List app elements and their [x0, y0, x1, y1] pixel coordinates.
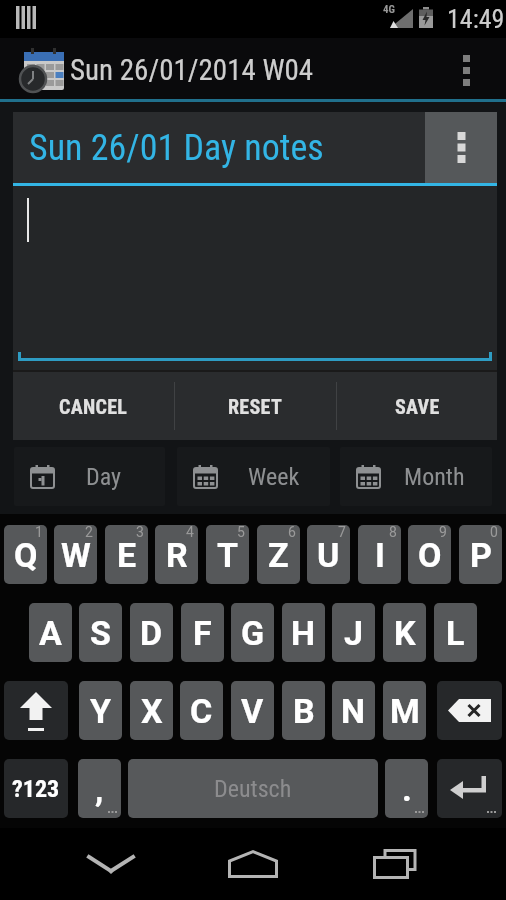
button[interactable]	[437, 759, 502, 818]
staticText: Q	[14, 535, 38, 575]
button[interactable]: Deutsch	[128, 759, 378, 818]
button[interactable]: G	[231, 603, 274, 662]
staticText: 0	[490, 525, 498, 540]
button[interactable]: W	[54, 525, 97, 584]
staticText: D	[140, 613, 163, 653]
staticText: K	[394, 613, 416, 653]
button[interactable]: A	[29, 603, 72, 662]
staticText: A	[39, 613, 62, 653]
button[interactable]: Z	[257, 525, 300, 584]
staticText: M	[390, 691, 420, 731]
button[interactable]: Y	[79, 681, 122, 740]
staticText: 4G	[383, 3, 396, 16]
button[interactable]: RESET	[175, 372, 336, 440]
button[interactable]: CANCEL	[13, 372, 174, 440]
button[interactable]	[425, 112, 497, 183]
button[interactable]: H	[282, 603, 325, 662]
staticText: CANCEL	[59, 395, 128, 418]
button[interactable]: S	[79, 603, 122, 662]
staticText: Y	[90, 691, 112, 731]
staticText: 5	[237, 525, 245, 540]
button[interactable]: F	[181, 603, 224, 662]
staticText: L	[446, 613, 465, 653]
button[interactable]	[462, 55, 471, 87]
staticText: G	[241, 613, 265, 653]
staticText: U	[317, 535, 340, 575]
staticText: Day	[86, 463, 122, 491]
staticText: 3	[136, 525, 144, 540]
button[interactable]: R	[155, 525, 198, 584]
button[interactable]: T	[206, 525, 249, 584]
staticText: B	[293, 691, 315, 731]
button[interactable]: Day	[14, 447, 165, 506]
staticText: F	[193, 613, 212, 653]
staticText: 7	[338, 525, 346, 540]
button[interactable]: O	[408, 525, 451, 584]
staticText: Deutsch	[214, 775, 292, 803]
staticText: 1	[35, 525, 43, 540]
button[interactable]: ?123	[4, 759, 68, 818]
staticText: V	[241, 691, 264, 731]
button[interactable]: ,	[78, 759, 121, 818]
staticText: J	[344, 613, 363, 653]
staticText: I	[375, 535, 385, 575]
button[interactable]: SAVE	[337, 372, 497, 440]
button[interactable]: X	[130, 681, 173, 740]
staticText: N	[341, 691, 366, 731]
button[interactable]	[76, 828, 146, 900]
staticText: 4	[186, 525, 194, 540]
button[interactable]	[4, 681, 68, 740]
button[interactable]	[218, 828, 288, 900]
staticText: W	[61, 535, 91, 575]
button[interactable]	[437, 681, 502, 740]
button[interactable]: I	[358, 525, 401, 584]
button[interactable]: L	[434, 603, 477, 662]
staticText: O	[418, 535, 442, 575]
staticText: SAVE	[395, 395, 440, 418]
button[interactable]: Month	[340, 447, 492, 506]
button[interactable]: Week	[177, 447, 330, 506]
button[interactable]: K	[383, 603, 426, 662]
staticText: X	[141, 691, 163, 731]
staticText: H	[291, 613, 316, 653]
button[interactable]: P	[459, 525, 502, 584]
button[interactable]: B	[282, 681, 325, 740]
button[interactable]: N	[332, 681, 375, 740]
button[interactable]: V	[231, 681, 274, 740]
staticText: 6	[288, 525, 296, 540]
staticText: RESET	[228, 395, 283, 418]
staticText: Sun 26/01 Day notes	[29, 127, 324, 169]
staticText: Week	[248, 463, 300, 491]
staticText: .	[402, 769, 412, 809]
staticText: Month	[404, 463, 465, 491]
staticText: S	[90, 613, 111, 653]
button[interactable]	[360, 828, 430, 900]
button[interactable]: J	[332, 603, 375, 662]
button[interactable]	[13, 186, 497, 370]
staticText: 2	[85, 525, 93, 540]
staticText: C	[190, 691, 213, 731]
button[interactable]: D	[130, 603, 173, 662]
staticText: E	[117, 535, 137, 575]
staticText: R	[166, 535, 188, 575]
button[interactable]: .	[385, 759, 428, 818]
button[interactable]: Q	[4, 525, 47, 584]
staticText: P	[470, 535, 492, 575]
staticText: ?123	[12, 775, 60, 803]
staticText: 8	[389, 525, 397, 540]
staticText: Sun 26/01/2014 W04	[70, 53, 314, 87]
staticText: 14:49	[447, 4, 505, 34]
staticText: Z	[268, 535, 289, 575]
staticText: 9	[439, 525, 447, 540]
staticText: T	[217, 535, 239, 575]
button[interactable]: C	[180, 681, 223, 740]
button[interactable]: M	[383, 681, 426, 740]
staticText: ,	[95, 769, 104, 809]
button[interactable]: E	[105, 525, 148, 584]
button[interactable]: U	[307, 525, 350, 584]
